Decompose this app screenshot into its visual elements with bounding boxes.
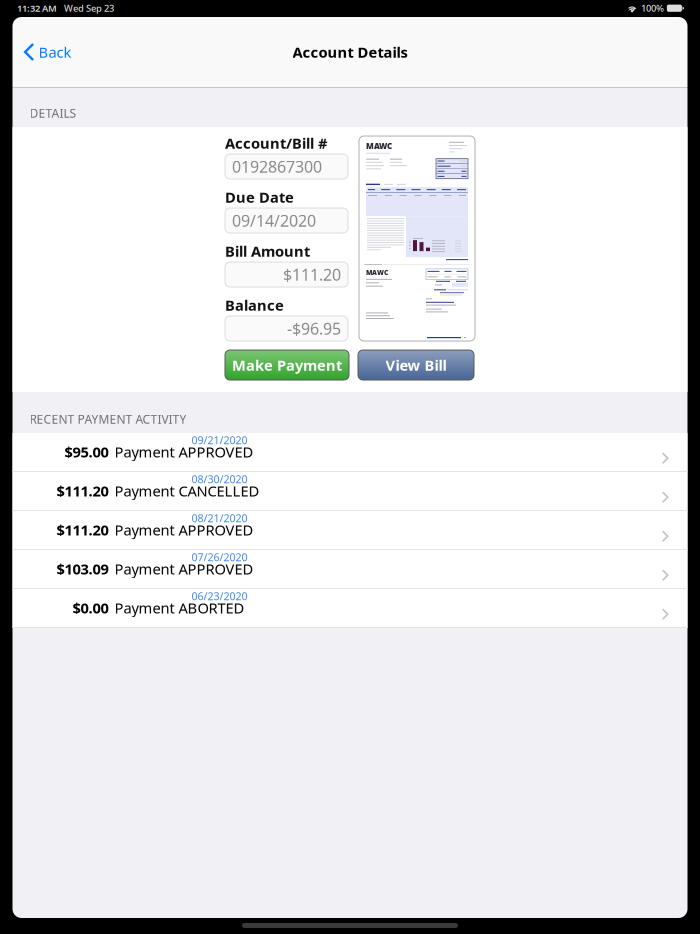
staticText: Back — [38, 42, 71, 62]
button[interactable]: 08/21/2020 — [12, 511, 687, 550]
staticText: $103.09 — [56, 559, 108, 578]
staticText: Account Details — [292, 42, 407, 62]
staticText: Payment APPROVED — [114, 559, 253, 578]
button[interactable]: View Bill — [358, 350, 474, 380]
staticText: MAWC — [366, 140, 392, 151]
staticText: 06/23/2020 — [191, 589, 247, 603]
staticText: $111.20 — [56, 481, 108, 500]
staticText: View Bill — [385, 355, 446, 375]
staticText: Wed Sep 23 — [64, 2, 114, 14]
staticText: $95.00 — [64, 442, 108, 461]
staticText: $111.20 — [56, 520, 108, 539]
staticText: Account/Bill # — [225, 133, 327, 153]
staticText: Payment ABORTED — [114, 598, 244, 617]
staticText: $0.00 — [72, 598, 108, 617]
button[interactable]: Back — [12, 33, 79, 71]
button[interactable]: 09/21/2020 — [12, 433, 687, 472]
staticText: Payment CANCELLED — [114, 481, 259, 500]
staticText: Due Date — [225, 187, 294, 207]
staticText: Make Payment — [232, 355, 342, 375]
staticText: 07/26/2020 — [191, 550, 247, 564]
button[interactable]: 07/26/2020 — [12, 550, 687, 589]
button[interactable]: 08/30/2020 — [12, 472, 687, 511]
staticText: Balance — [225, 295, 284, 315]
button[interactable]: 06/23/2020 — [12, 589, 687, 628]
staticText: 100% — [641, 2, 664, 14]
staticText: Payment APPROVED — [114, 442, 253, 461]
staticText: $111.20 — [283, 264, 341, 285]
staticText: Bill Amount — [225, 241, 310, 261]
staticText: RECENT PAYMENT ACTIVITY — [29, 411, 186, 427]
staticText: DETAILS — [29, 105, 76, 121]
staticText: 09/14/2020 — [232, 210, 316, 231]
staticText: 08/21/2020 — [191, 511, 247, 525]
staticText: MAWC — [366, 268, 388, 277]
staticText: 08/30/2020 — [191, 472, 247, 486]
staticText: 09/21/2020 — [191, 433, 247, 447]
button[interactable]: Make Payment — [225, 350, 349, 380]
staticText: 11:32 AM — [17, 2, 57, 14]
staticText: 0192867300 — [232, 156, 322, 177]
staticText: -$96.95 — [287, 318, 341, 339]
staticText: Payment APPROVED — [114, 520, 253, 539]
